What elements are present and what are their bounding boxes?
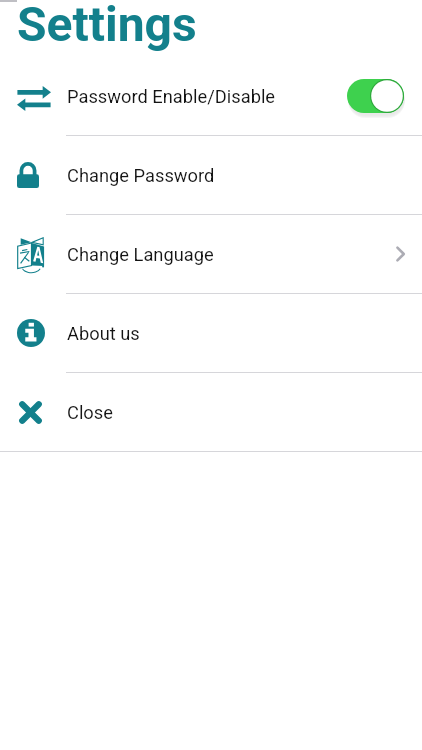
staticText: Change Language — [67, 244, 214, 265]
button[interactable]: Password Enable/Disable — [0, 57, 422, 135]
button[interactable]: Password enable/disable toggle — [347, 76, 406, 116]
button[interactable]: Close — [0, 373, 422, 451]
button[interactable]: About us — [0, 294, 422, 372]
other: Open language settings — [395, 246, 406, 262]
staticText: Change Password — [67, 165, 215, 186]
button[interactable]: Change Language — [0, 215, 422, 293]
staticText: Close — [67, 402, 113, 423]
staticText: About us — [67, 323, 140, 344]
staticText: Settings — [17, 0, 197, 52]
staticText: Password Enable/Disable — [67, 86, 276, 107]
button[interactable]: Change Password — [0, 136, 422, 214]
